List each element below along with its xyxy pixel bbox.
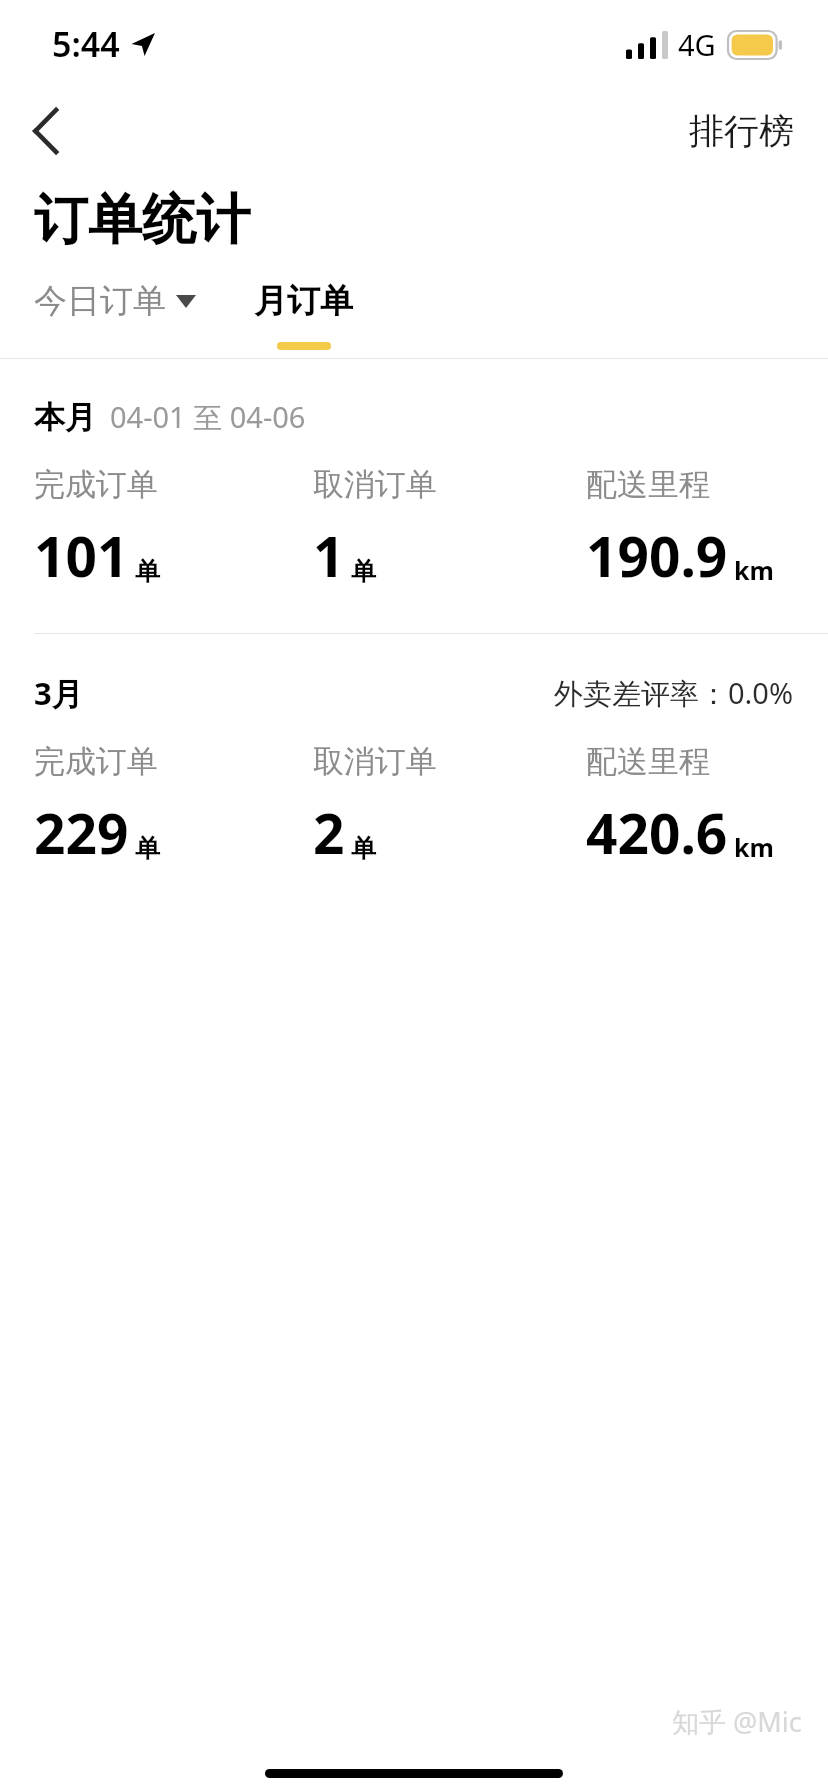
button[interactable]: Back [18,103,74,159]
button[interactable]: 排行榜 [677,101,806,161]
staticText: 知乎 @Mic [672,1703,802,1740]
staticText: 月订单 [254,280,353,322]
staticText: 完成订单 [34,465,158,504]
staticText: 单 [351,833,376,864]
staticText: 配送里程 [586,465,710,504]
staticText: 外卖差评率：0.0% [554,673,794,713]
staticText: 排行榜 [689,109,794,153]
staticText: 取消订单 [313,465,437,504]
button[interactable]: 月订单 [238,272,369,350]
staticText: 229 [34,795,129,870]
staticText: 420.6 [586,795,728,870]
staticText: 今日订单 [34,280,166,322]
staticText: 2 [313,795,345,870]
staticText: 4G [678,25,716,64]
staticText: 190.9 [586,518,728,593]
staticText: 取消订单 [313,742,437,781]
staticText: km [734,553,774,587]
staticText: 3月 [34,672,83,714]
staticText: 04-01 至 04-06 [110,397,306,437]
staticText: 单 [135,556,160,587]
staticText: km [734,830,774,864]
staticText: 单 [351,556,376,587]
staticText: 配送里程 [586,742,710,781]
button[interactable]: 今日订单 [22,272,208,330]
staticText: 订单统计 [34,186,250,254]
staticText: 5:44 [52,21,120,67]
staticText: 101 [34,518,129,593]
staticText: 本月 [34,398,96,437]
staticText: 完成订单 [34,742,158,781]
staticText: 单 [135,833,160,864]
staticText: 1 [313,518,345,593]
